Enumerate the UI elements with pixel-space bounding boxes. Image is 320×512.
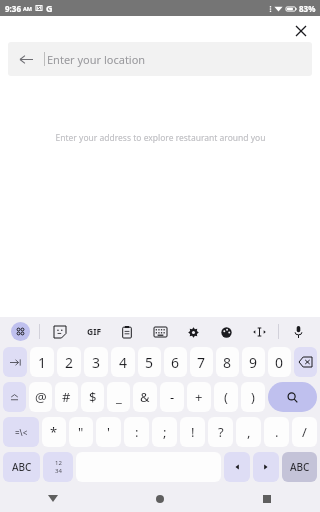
- staticText: /: [302, 423, 307, 441]
- button[interactable]: 6: [164, 347, 187, 377]
- button[interactable]: ": [69, 417, 93, 447]
- staticText: ': [107, 423, 110, 441]
- button[interactable]: Search: [268, 382, 317, 412]
- button[interactable]: &: [133, 382, 157, 412]
- button[interactable]: #: [55, 382, 78, 412]
- staticText: +: [195, 388, 203, 406]
- staticText: 7: [197, 353, 206, 372]
- staticText: 3: [92, 353, 101, 372]
- staticText: ABC: [12, 460, 32, 474]
- button[interactable]: Shift: [3, 382, 26, 412]
- staticText: $: [89, 388, 97, 406]
- staticText: 8: [223, 353, 232, 372]
- staticText: 9: [249, 353, 258, 372]
- button[interactable]: 4: [111, 347, 135, 377]
- button[interactable]: Theme: [215, 321, 237, 343]
- button[interactable]: Home: [106, 485, 213, 512]
- staticText: -: [170, 388, 175, 406]
- staticText: Enter your address to explore restaurant…: [55, 132, 266, 144]
- button[interactable]: :: [124, 417, 149, 447]
- button[interactable]: Close: [288, 18, 314, 44]
- staticText: 83%: [299, 3, 316, 14]
- staticText: 4: [119, 353, 128, 372]
- staticText: ABC: [290, 460, 310, 474]
- button[interactable]: Keyboard mode: [149, 321, 171, 343]
- button[interactable]: !: [180, 417, 205, 447]
- staticText: ): [251, 388, 255, 406]
- button[interactable]: 5: [138, 347, 161, 377]
- staticText: @: [35, 388, 47, 406]
- button[interactable]: Back: [0, 485, 106, 512]
- button[interactable]: ?: [208, 417, 233, 447]
- button[interactable]: -: [160, 382, 184, 412]
- button[interactable]: Settings: [182, 321, 204, 343]
- button[interactable]: (: [214, 382, 238, 412]
- button[interactable]: ): [241, 382, 265, 412]
- button[interactable]: 0: [268, 347, 291, 377]
- button[interactable]: GIF: [83, 321, 105, 343]
- button[interactable]: Stickers: [49, 321, 71, 343]
- staticText: =\<: [15, 427, 28, 438]
- staticText: _: [116, 388, 122, 406]
- staticText: ?: [218, 423, 224, 441]
- button[interactable]: Backspace: [294, 347, 317, 377]
- staticText: (: [224, 388, 228, 406]
- button[interactable]: Move cursor left: [224, 452, 250, 482]
- staticText: :: [135, 423, 139, 441]
- button[interactable]: Text editing: [248, 321, 270, 343]
- staticText: 0: [275, 353, 284, 372]
- button[interactable]: /: [292, 417, 317, 447]
- button[interactable]: ,: [236, 417, 261, 447]
- staticText: &: [140, 388, 150, 406]
- button[interactable]: +: [187, 382, 211, 412]
- staticText: 6: [171, 353, 180, 372]
- button[interactable]: *: [42, 417, 66, 447]
- button[interactable]: Letters: [3, 452, 40, 482]
- button[interactable]: Switch language: [282, 452, 317, 482]
- staticText: 1: [38, 353, 47, 372]
- button[interactable]: 7: [190, 347, 213, 377]
- button[interactable]: 1: [30, 347, 54, 377]
- staticText: ;: [163, 423, 167, 441]
- staticText: 2: [65, 353, 74, 372]
- staticText: #: [62, 388, 71, 406]
- button[interactable]: ': [96, 417, 121, 447]
- button[interactable]: Move cursor right: [253, 452, 279, 482]
- button[interactable]: 2: [57, 347, 81, 377]
- staticText: 5: [145, 353, 154, 372]
- button[interactable]: Back: [16, 49, 36, 69]
- button[interactable]: Keyboard options: [11, 322, 30, 341]
- button[interactable]: 3: [84, 347, 108, 377]
- button[interactable]: $: [81, 382, 104, 412]
- staticText: GIF: [87, 326, 102, 338]
- button[interactable]: _: [107, 382, 130, 412]
- staticText: Enter your location: [47, 52, 146, 67]
- button[interactable]: Recent apps: [213, 485, 320, 512]
- button[interactable]: Voice input: [287, 321, 309, 343]
- button[interactable]: Tab: [3, 347, 27, 377]
- staticText: G: [46, 2, 53, 14]
- staticText: *: [50, 423, 58, 441]
- button[interactable]: .: [264, 417, 289, 447]
- button[interactable]: Symbols: [3, 417, 39, 447]
- staticText: ": [78, 423, 84, 441]
- button[interactable]: Numbers: [43, 452, 73, 482]
- button[interactable]: 8: [216, 347, 239, 377]
- staticText: .: [275, 423, 279, 441]
- staticText: 12: [55, 459, 62, 467]
- button[interactable]: Clipboard: [116, 321, 138, 343]
- staticText: ,: [247, 423, 251, 441]
- button[interactable]: ;: [152, 417, 177, 447]
- staticText: 9:36: [5, 3, 21, 14]
- staticText: 34: [55, 467, 62, 475]
- staticText: AM: [23, 5, 32, 12]
- button[interactable]: 9: [242, 347, 265, 377]
- button[interactable]: @: [29, 382, 52, 412]
- staticText: !: [191, 423, 195, 441]
- button[interactable]: Back: [8, 42, 312, 76]
